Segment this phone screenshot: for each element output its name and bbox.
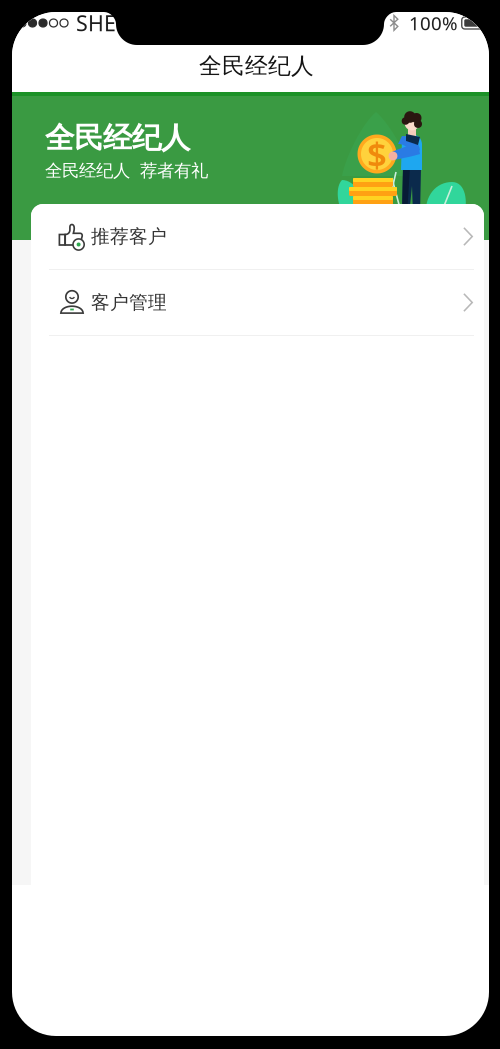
staticText: $ bbox=[367, 131, 387, 177]
staticText: 全民经纪人 荐者有礼 bbox=[45, 160, 208, 181]
staticText: 客户管理 bbox=[91, 291, 167, 314]
staticText: 全民经纪人 bbox=[199, 52, 314, 80]
staticText: 推荐客户 bbox=[91, 225, 167, 248]
button[interactable]: 客户管理 bbox=[31, 270, 484, 336]
button[interactable]: 推荐客户 bbox=[31, 204, 484, 270]
staticText: 全民经纪人 bbox=[45, 120, 190, 156]
staticText: 100% bbox=[409, 11, 458, 35]
staticText: SHETU bbox=[76, 9, 144, 37]
